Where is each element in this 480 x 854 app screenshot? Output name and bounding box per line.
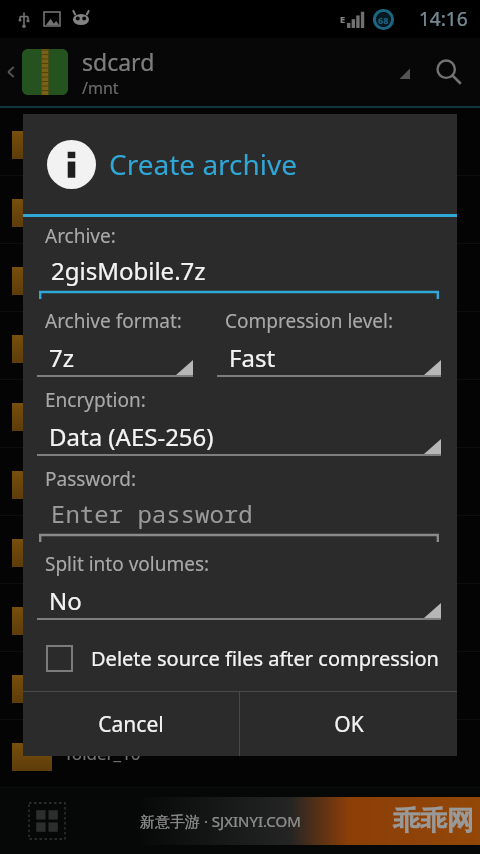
staticText: Split into volumes: xyxy=(45,551,210,577)
staticText: folder_3 xyxy=(66,266,131,289)
staticText: folder_9 xyxy=(66,674,131,697)
staticText: folder_10 xyxy=(66,742,141,765)
staticText: Encryption: xyxy=(45,387,146,413)
button[interactable]: folder_6 xyxy=(0,448,480,515)
staticText: 7z xyxy=(49,341,75,374)
staticText: 2gisMobile.7z xyxy=(51,254,206,287)
staticText: 14:16 xyxy=(419,6,468,32)
button[interactable]: folder_4 xyxy=(0,312,480,379)
button[interactable]: Enter password xyxy=(39,497,439,542)
button[interactable]: 2gisMobile.7z xyxy=(39,254,439,299)
staticText: Data (AES-256) xyxy=(49,420,214,453)
button[interactable]: Grid view xyxy=(26,800,68,842)
staticText: 新意手游 · SJXINYI.COM xyxy=(140,811,393,831)
button[interactable]: folder_1 xyxy=(0,108,480,175)
button[interactable]: Search xyxy=(418,38,480,106)
button[interactable]: folder_9 xyxy=(0,652,480,719)
staticText: folder_5 xyxy=(66,402,131,425)
staticText: Archive format: xyxy=(45,308,182,334)
button[interactable]: 7z xyxy=(37,339,193,378)
button[interactable]: Cancel xyxy=(23,692,239,756)
button[interactable]: No xyxy=(37,582,441,621)
button[interactable]: folder_2 xyxy=(0,176,480,243)
staticText: folder_2 xyxy=(66,198,131,221)
staticText: Compression level: xyxy=(225,308,394,334)
staticText: sdcard xyxy=(82,46,155,77)
staticText: folder_8 xyxy=(66,606,131,629)
button[interactable]: Up xyxy=(0,38,22,106)
staticText: OK xyxy=(334,710,364,739)
staticText: folder_1 xyxy=(66,130,131,153)
button[interactable]: folder_7 xyxy=(0,516,480,583)
button[interactable]: folder_3 xyxy=(0,244,480,311)
staticText: 乖乖网 xyxy=(393,804,474,838)
button[interactable]: Fast xyxy=(217,339,441,378)
button[interactable]: folder_8 xyxy=(0,584,480,651)
staticText: Delete source files after compression xyxy=(91,645,439,672)
staticText: E xyxy=(340,13,346,25)
staticText: No xyxy=(49,584,82,617)
staticText: Fast xyxy=(229,341,276,374)
staticText: /mnt xyxy=(82,77,119,99)
staticText: Create archive xyxy=(109,145,298,183)
button[interactable]: OK xyxy=(240,692,457,756)
staticText: Enter password xyxy=(51,497,253,530)
staticText: folder_6 xyxy=(66,470,131,493)
staticText: folder_4 xyxy=(66,334,131,357)
button[interactable]: folder_5 xyxy=(0,380,480,447)
staticText: Archive: xyxy=(45,223,116,249)
staticText: 68 xyxy=(378,14,389,26)
button[interactable]: folder_10 xyxy=(0,720,480,787)
button[interactable]: Sort xyxy=(388,38,418,106)
staticText: Cancel xyxy=(98,710,164,739)
button[interactable]: Data (AES-256) xyxy=(37,418,441,457)
staticText: Password: xyxy=(45,466,137,492)
staticText: folder_7 xyxy=(66,538,131,561)
button[interactable]: Delete source files after compression xyxy=(33,629,445,687)
